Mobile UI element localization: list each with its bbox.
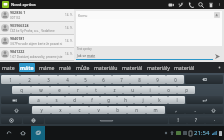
button[interactable]: Add contact [214, 12, 220, 18]
button[interactable]: , [166, 106, 185, 114]
button[interactable]: p [177, 86, 195, 94]
button[interactable]: Emoji [205, 116, 223, 124]
button[interactable]: materiál [120, 62, 145, 73]
staticText: 0 [174, 77, 177, 83]
button[interactable]: a [29, 96, 47, 104]
button[interactable]: 9841222 [0, 48, 74, 60]
button[interactable]: Call [186, 0, 196, 9]
button[interactable]: App icon [2, 1, 9, 8]
staticText: 8 [138, 77, 141, 83]
staticText: mate [2, 64, 15, 71]
button[interactable]: i [141, 86, 159, 94]
button[interactable]: Jak se [76, 53, 213, 58]
button[interactable]: Home [17, 127, 29, 139]
button[interactable]: Back [3, 127, 15, 139]
button[interactable]: t [87, 86, 105, 94]
button[interactable]: z [105, 86, 123, 94]
button[interactable]: Insert smiley [176, 0, 186, 9]
button[interactable]: w [31, 86, 50, 94]
staticText: 14. 9. [65, 26, 73, 30]
button[interactable]: Komu [76, 11, 222, 19]
button[interactable]: Space [45, 116, 168, 124]
button[interactable]: materiál [172, 62, 197, 73]
button[interactable]: 0 [166, 75, 184, 84]
button[interactable]: More suggestions [215, 62, 224, 73]
button[interactable]: d [65, 96, 83, 104]
button[interactable]: h [117, 96, 134, 104]
staticText: u [131, 87, 134, 93]
button[interactable]: malé [57, 62, 74, 73]
staticText: d [73, 97, 76, 103]
staticText: může [76, 64, 90, 71]
button[interactable]: Send [213, 52, 222, 60]
button[interactable]: b [108, 106, 127, 114]
button[interactable]: mate [0, 62, 17, 73]
button[interactable]: může [74, 62, 92, 73]
staticText: 14. 9. [65, 39, 73, 43]
button[interactable]: 3 [39, 75, 58, 84]
button[interactable]: e [50, 86, 69, 94]
button[interactable]: s [47, 96, 65, 104]
button[interactable]: Settings [1, 116, 22, 124]
staticText: q [20, 87, 23, 93]
staticText: 903966324 [10, 23, 29, 28]
staticText: ? [195, 117, 197, 123]
button[interactable]: Enter [186, 96, 223, 104]
button[interactable]: ? [187, 116, 205, 124]
button[interactable]: Backspace [185, 75, 223, 84]
button[interactable]: máte [17, 62, 37, 73]
staticText: n [135, 107, 138, 113]
button[interactable]: 2 [20, 75, 39, 84]
button[interactable]: 902836 1 [0, 9, 74, 21]
button[interactable]: 1 [1, 75, 20, 84]
button[interactable]: l [168, 96, 185, 104]
staticText: i [149, 87, 151, 93]
button[interactable]: 5 [76, 75, 94, 84]
button[interactable]: m [146, 106, 165, 114]
button[interactable]: máme [37, 62, 57, 73]
button[interactable]: materiálu [92, 62, 120, 73]
staticText: 902836 1 [10, 10, 26, 15]
button[interactable]: f [83, 96, 100, 104]
button[interactable]: 6 [94, 75, 112, 84]
button[interactable]: 8 [130, 75, 148, 84]
button[interactable]: k [151, 96, 168, 104]
button[interactable]: v [89, 106, 108, 114]
button[interactable]: 7 [112, 75, 130, 84]
button[interactable]: Attach [166, 0, 176, 9]
button[interactable]: ! [169, 116, 187, 124]
staticText: 7 [120, 77, 123, 83]
button[interactable]: q [12, 86, 31, 94]
button[interactable]: x [51, 106, 70, 114]
staticText: 007132 [10, 16, 21, 20]
button[interactable]: r [69, 86, 87, 94]
button[interactable]: . [185, 106, 204, 114]
staticText: malé [59, 64, 72, 71]
button[interactable]: More options [216, 0, 223, 9]
staticText: 1 [9, 77, 12, 83]
button[interactable]: 9840181 [0, 35, 74, 47]
button[interactable]: Shift [1, 106, 31, 114]
button[interactable]: 903966324 [0, 22, 74, 34]
button[interactable]: Search [196, 0, 206, 9]
staticText: h [124, 97, 127, 103]
button[interactable]: Change language [23, 116, 44, 124]
staticText: c [78, 107, 81, 113]
button[interactable]: Shift [204, 106, 223, 114]
staticText: 6 [102, 77, 105, 83]
button[interactable]: g [100, 96, 117, 104]
staticText: e [58, 87, 61, 93]
button[interactable]: Delete [206, 0, 216, 9]
button[interactable]: c [70, 106, 89, 114]
button[interactable]: Recent apps [31, 126, 45, 140]
button[interactable]: y [32, 106, 51, 114]
button[interactable]: materiály [145, 62, 172, 73]
button[interactable]: 4 [58, 75, 76, 84]
button[interactable]: n [127, 106, 146, 114]
button[interactable]: Tab [1, 96, 28, 104]
button[interactable]: u [123, 86, 141, 94]
button[interactable]: j [134, 96, 151, 104]
button[interactable]: 9 [148, 75, 166, 84]
button[interactable]: o [159, 86, 177, 94]
